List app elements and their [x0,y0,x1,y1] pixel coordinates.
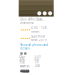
button[interactable]: Reserve [20,70,29,73]
staticText: ★★★★★ [20,28,30,31]
staticText: Superhost since 2019 [31,35,47,42]
button[interactable]: Favourite [37,11,41,15]
staticText: 3:00 PM [34,55,41,62]
staticText: Check in [19,55,26,62]
staticText: Show all photos and details [20,43,48,50]
staticText: Guests [20,64,29,68]
staticText: 11:00 AM [35,57,40,68]
staticText: Check out [20,57,25,68]
staticText: ★★★★★ [20,37,30,40]
staticText: 4.92 · 128 reviews [31,26,47,33]
staticText: 4 [38,64,40,68]
staticText: Glen Affric Estate, Inverness [20,18,44,25]
button[interactable]: Show all photos and details [20,43,48,50]
staticText: Reserve [20,68,29,75]
button[interactable]: Share [43,11,47,15]
button[interactable]: More [48,11,52,15]
